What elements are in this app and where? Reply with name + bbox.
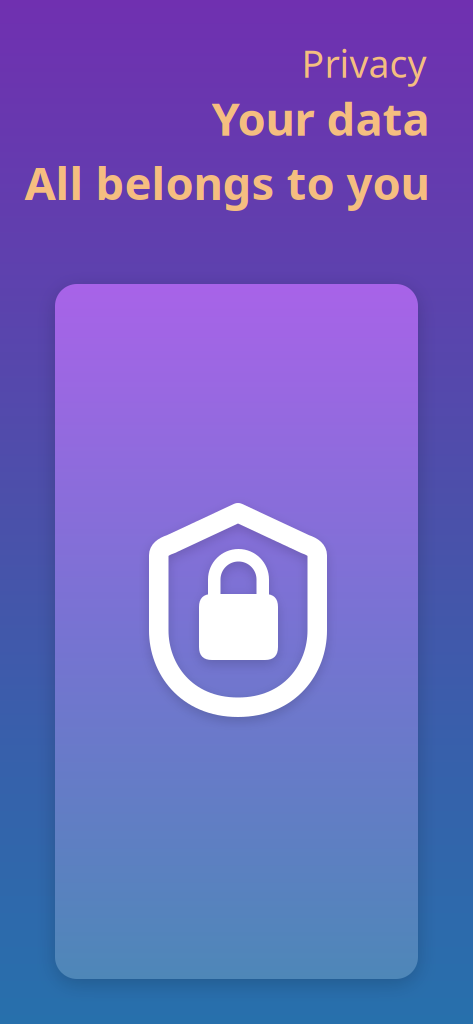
staticText: Privacy <box>301 38 426 88</box>
staticText: Your data <box>211 88 429 148</box>
button[interactable]: Your data all belongs to you <box>55 284 418 979</box>
staticText: All belongs to you <box>24 152 429 212</box>
